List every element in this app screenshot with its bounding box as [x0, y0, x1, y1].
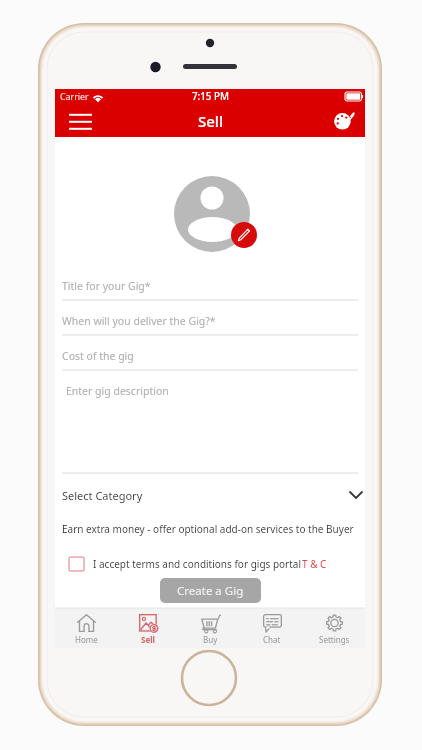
button[interactable]: Select Category — [55, 484, 365, 506]
staticText: Chat — [263, 634, 281, 645]
staticText: Carrier — [60, 91, 89, 103]
button[interactable]: Sell — [117, 608, 179, 648]
button[interactable]: Create a Gig — [160, 578, 261, 603]
staticText: Home — [75, 634, 98, 645]
button[interactable]: I accept terms and conditions for gigs p… — [69, 554, 327, 574]
button[interactable]: Edit profile photo — [231, 222, 257, 248]
button[interactable]: Settings — [303, 608, 365, 648]
staticText: When will you deliver the Gig?* — [62, 314, 216, 328]
button[interactable]: Home — [55, 608, 117, 648]
staticText: Title for your Gig* — [62, 279, 151, 293]
staticText: Settings — [319, 634, 350, 645]
staticText: Earn extra money - offer optional add-on… — [62, 522, 354, 536]
staticText: Buy — [203, 634, 218, 645]
staticText: 7:15 PM — [192, 90, 229, 103]
button[interactable]: Theme — [332, 108, 358, 134]
staticText: Create a Gig — [177, 583, 244, 599]
staticText: Select Category — [62, 488, 143, 503]
staticText: Sell — [198, 111, 223, 131]
button[interactable]: Buy — [179, 608, 241, 648]
staticText: T & C — [302, 557, 327, 571]
button[interactable]: Chat — [241, 608, 303, 648]
staticText: Enter gig description — [66, 384, 169, 398]
staticText: I accept terms and conditions for gigs p… — [93, 557, 302, 571]
staticText: Sell — [141, 634, 155, 645]
button[interactable]: Menu — [65, 106, 95, 136]
staticText: Cost of the gig — [62, 349, 134, 363]
